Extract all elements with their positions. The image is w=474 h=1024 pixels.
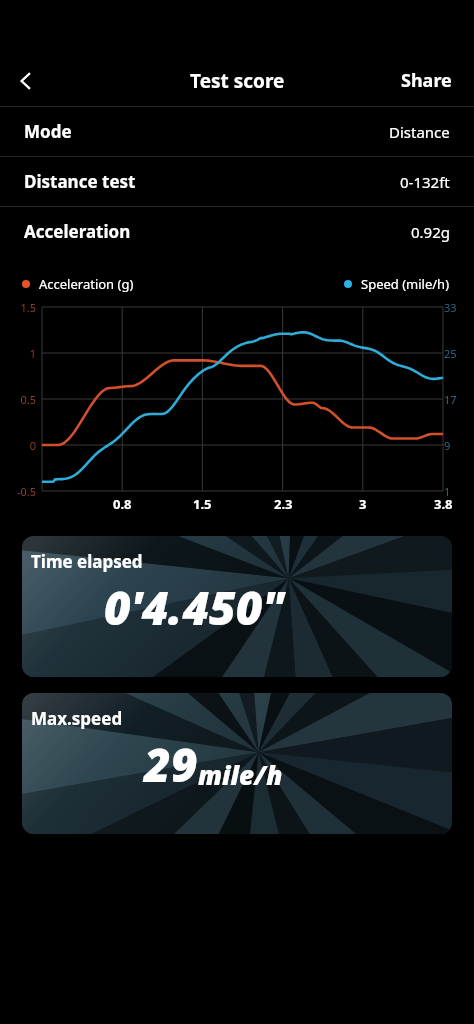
- staticText: 0'4.450": [104, 576, 284, 639]
- button[interactable]: Mode: [0, 107, 474, 156]
- staticText: 9: [444, 438, 451, 453]
- staticText: Max.speed: [31, 707, 123, 730]
- staticText: 33: [444, 300, 457, 315]
- staticText: 17: [444, 392, 457, 407]
- staticText: mile/h: [198, 757, 283, 792]
- staticText: 0.8: [113, 495, 132, 513]
- staticText: 2.3: [274, 495, 293, 513]
- staticText: Acceleration: [24, 220, 131, 243]
- staticText: Mode: [24, 120, 72, 143]
- button[interactable]: Acceleration: [0, 207, 474, 256]
- staticText: -0.5: [16, 484, 36, 499]
- staticText: Distance test: [24, 170, 136, 193]
- staticText: 0: [29, 438, 36, 453]
- staticText: 0.92g: [411, 222, 450, 242]
- staticText: Acceleration (g): [39, 275, 134, 293]
- staticText: 1: [444, 484, 451, 499]
- staticText: 25: [444, 346, 457, 361]
- staticText: 1.5: [20, 300, 36, 315]
- staticText: 0-132ft: [400, 172, 450, 192]
- staticText: 3.8: [434, 495, 453, 513]
- staticText: 3: [359, 495, 367, 513]
- staticText: 1.5: [193, 495, 212, 513]
- staticText: 1: [29, 346, 36, 361]
- staticText: Time elapsed: [31, 550, 143, 573]
- button[interactable]: Share: [379, 55, 474, 106]
- button[interactable]: Time elapsed: [22, 536, 452, 677]
- staticText: Share: [401, 68, 452, 93]
- staticText: 0.5: [20, 392, 36, 407]
- staticText: Distance: [389, 122, 450, 142]
- button[interactable]: Back: [0, 55, 52, 106]
- button[interactable]: Distance test: [0, 157, 474, 206]
- button[interactable]: Max.speed: [22, 693, 452, 834]
- staticText: 29: [144, 733, 198, 796]
- staticText: Test score: [190, 68, 285, 94]
- staticText: Speed (mile/h): [361, 275, 450, 293]
